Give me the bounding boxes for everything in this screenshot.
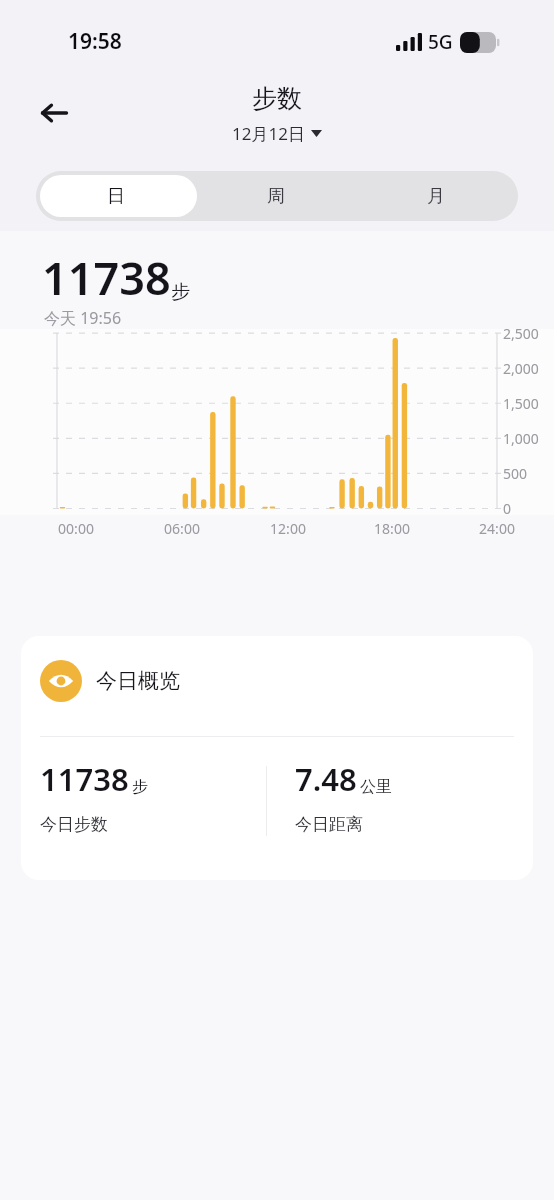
staticText: 今日距离	[295, 814, 363, 835]
staticText: 1,500	[503, 394, 539, 413]
staticText: 步数	[252, 83, 302, 114]
button[interactable]: 月	[356, 171, 516, 221]
staticText: 06:00	[156, 519, 208, 538]
button[interactable]: 今日概览	[21, 636, 533, 880]
button[interactable]: 周	[196, 171, 356, 221]
staticText: 今天 19:56	[44, 307, 122, 329]
staticText: 2,000	[503, 359, 539, 378]
staticText: 24:00	[471, 519, 523, 538]
staticText: 19:58	[68, 27, 122, 56]
button[interactable]: 12月12日	[226, 120, 328, 147]
staticText: 步	[171, 280, 190, 304]
staticText: 5G	[428, 29, 453, 55]
staticText: 今日概览	[96, 668, 180, 694]
button[interactable]: Back	[30, 89, 78, 137]
staticText: 步	[132, 777, 148, 797]
staticText: 18:00	[366, 519, 418, 538]
staticText: 7.48	[295, 758, 357, 800]
staticText: 1,000	[503, 429, 539, 448]
staticText: 日	[107, 185, 125, 208]
staticText: 12:00	[262, 519, 314, 538]
button[interactable]: 日	[36, 171, 196, 221]
staticText: 0	[503, 499, 512, 518]
staticText: 00:00	[50, 519, 102, 538]
staticText: 11738	[42, 247, 171, 308]
staticText: 2,500	[503, 324, 539, 343]
staticText: 11738	[40, 758, 129, 800]
staticText: 今日步数	[40, 814, 108, 835]
staticText: 500	[503, 464, 528, 483]
staticText: 月	[427, 185, 445, 208]
staticText: 周	[267, 185, 285, 208]
staticText: 12月12日	[232, 122, 305, 145]
staticText: 公里	[360, 777, 392, 797]
